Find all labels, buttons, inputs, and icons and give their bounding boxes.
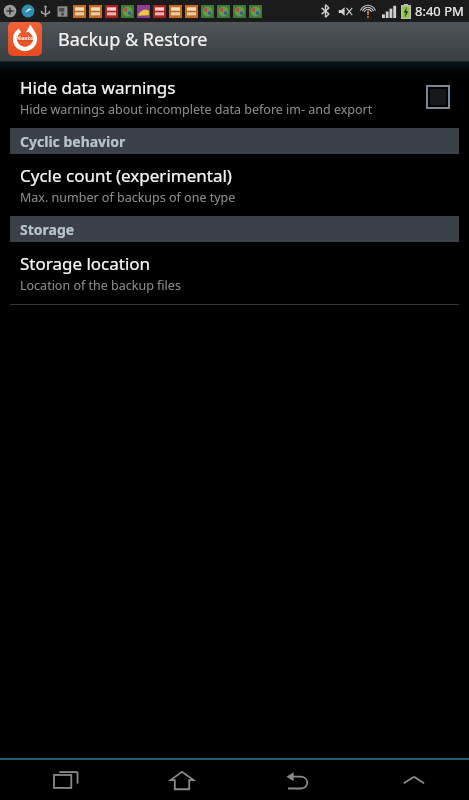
button[interactable]: Home: [156, 760, 208, 800]
button[interactable]: Collapse: [388, 760, 440, 800]
staticText: 8:40 PM: [415, 2, 464, 20]
staticText: Backup & Restore: [58, 27, 208, 52]
staticText: Hide warnings about incomplete data befo…: [20, 101, 373, 118]
button[interactable]: Recent apps: [40, 760, 92, 800]
button[interactable]: Hide data warnings checkbox: [423, 82, 453, 112]
staticText: Nasto: [16, 34, 34, 42]
staticText: Hide data warnings: [20, 76, 176, 99]
staticText: Max. number of backups of one type: [20, 189, 236, 206]
staticText: Storage: [20, 220, 75, 239]
button[interactable]: Storage location: [0, 242, 469, 305]
button[interactable]: Hide data warnings: [0, 66, 469, 128]
staticText: Cycle count (experimental): [20, 164, 232, 187]
staticText: Storage location: [20, 252, 151, 275]
button[interactable]: Cycle count (experimental): [0, 154, 469, 216]
staticText: Cyclic behavior: [20, 132, 126, 151]
button[interactable]: Nasto: [8, 22, 469, 56]
staticText: Location of the backup files: [20, 277, 181, 294]
button[interactable]: Back: [272, 760, 324, 800]
